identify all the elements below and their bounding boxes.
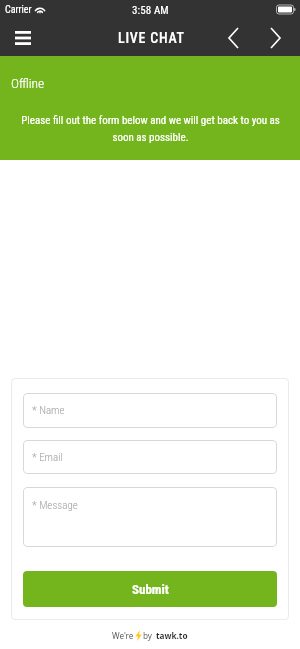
staticText: tawk.to [156, 630, 188, 641]
staticText: We're [112, 630, 134, 641]
staticText: 3:58 AM [132, 4, 169, 17]
staticText: * Email [32, 451, 63, 464]
button[interactable]: * Message [23, 487, 277, 547]
button[interactable]: Submit [23, 571, 277, 607]
staticText: LIVE CHAT [118, 30, 185, 46]
staticText: * Name [32, 404, 65, 417]
button[interactable]: * Email [23, 440, 277, 474]
button[interactable]: Next [263, 22, 288, 54]
staticText: Please fill out the form below and we wi… [21, 114, 280, 144]
staticText: by [143, 630, 153, 641]
button[interactable]: * Name [23, 393, 277, 428]
button[interactable]: Previous [221, 22, 246, 54]
staticText: Carrier [5, 4, 32, 16]
staticText: Offline [11, 75, 45, 91]
staticText: Submit [132, 582, 169, 597]
staticText: * Message [32, 499, 78, 512]
button[interactable]: We're [112, 630, 188, 641]
button[interactable]: Menu [7, 23, 38, 54]
